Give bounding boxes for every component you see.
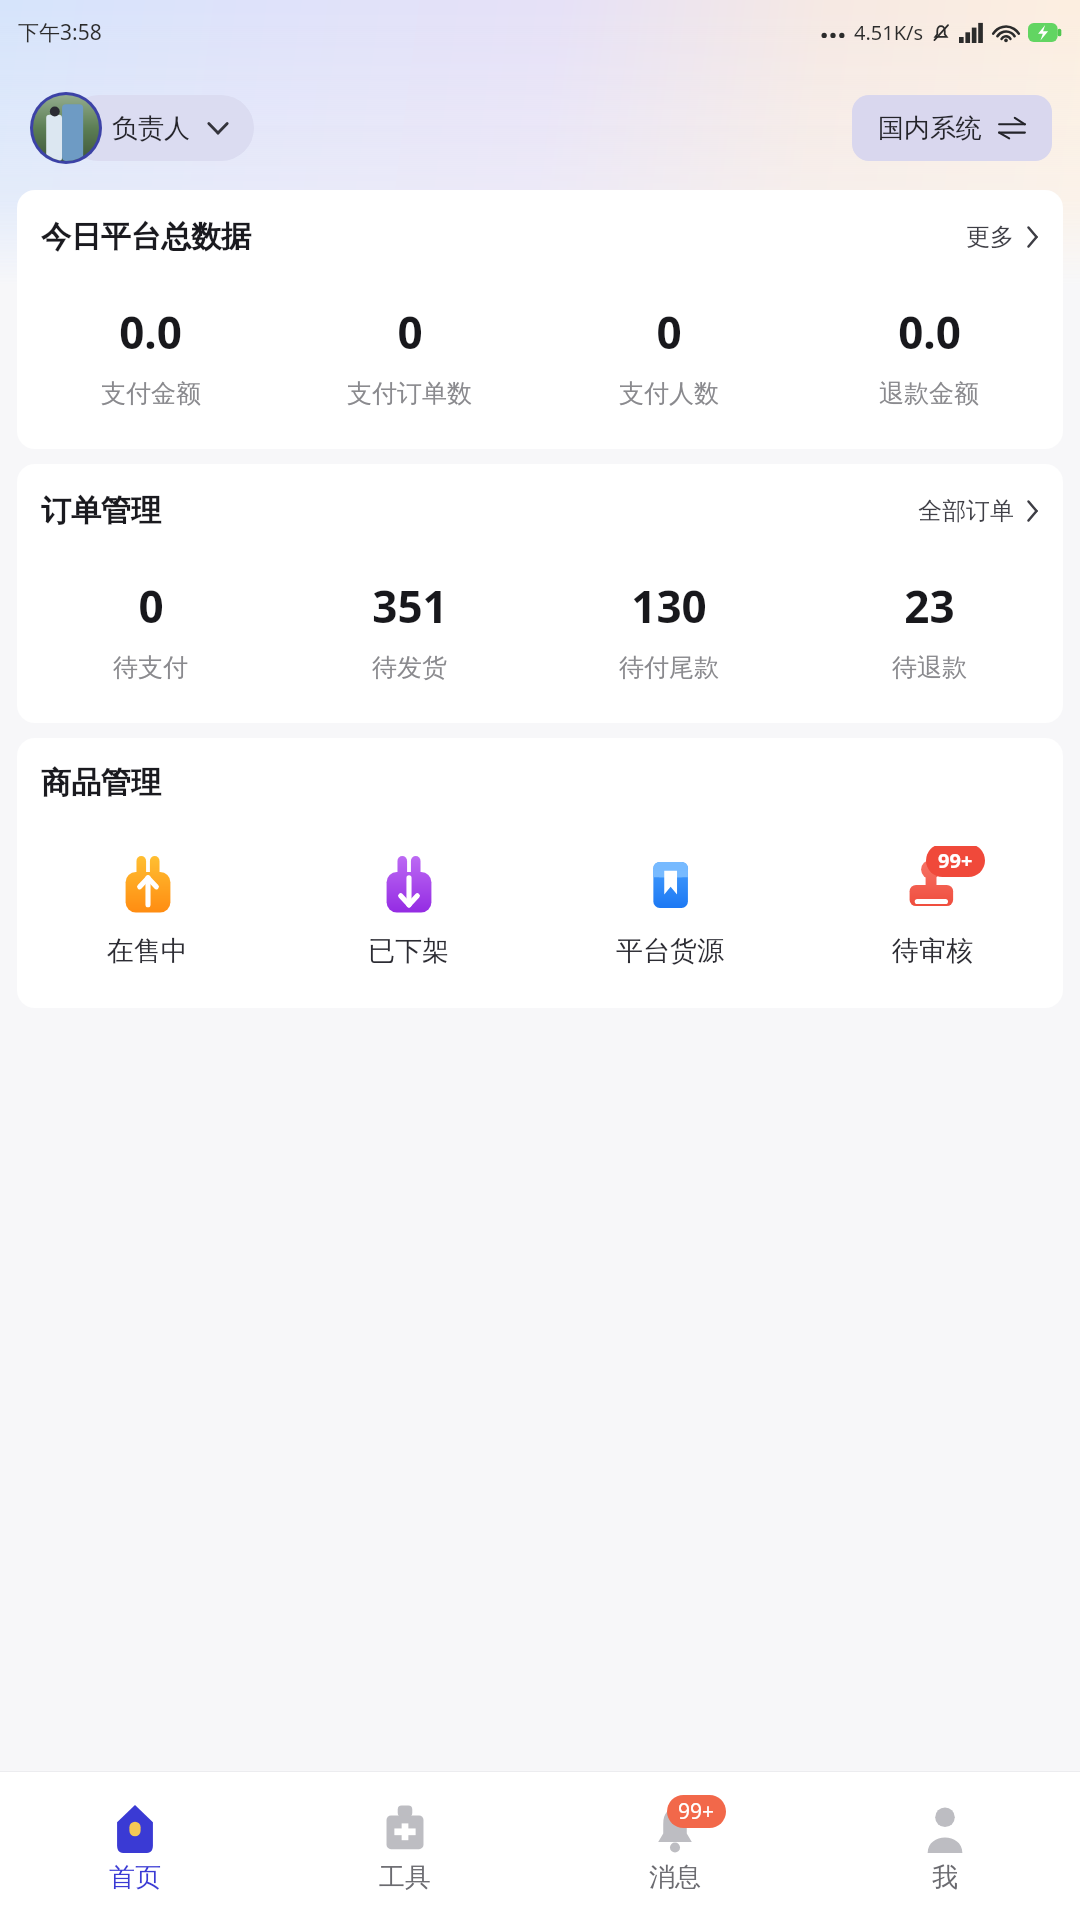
staticText: 待支付 [113,652,188,683]
staticText: 351 [372,576,448,636]
button[interactable]: 0.0 [21,298,280,413]
staticText: 0.0 [898,302,961,362]
button[interactable]: 首页 [0,1772,270,1920]
button[interactable]: 国内系统 [852,95,1052,161]
staticText: 今日平台总数据 [41,218,251,256]
staticText: 待退款 [892,652,967,683]
staticText: 退款金额 [879,378,979,409]
button[interactable]: 平台货源 [539,846,801,972]
button[interactable]: 0.0 [799,298,1059,413]
staticText: 待审核 [892,934,973,968]
button[interactable]: 0 [21,572,280,687]
button[interactable]: 99+ [801,846,1063,972]
staticText: 4.51K/s [854,19,924,46]
staticText: 23 [904,576,955,636]
staticText: 首页 [109,1861,161,1894]
button[interactable]: 已下架 [278,846,539,972]
staticText: 订单管理 [41,492,161,530]
staticText: 支付人数 [619,378,719,409]
button[interactable]: 0 [539,298,799,413]
staticText: 0 [397,302,423,362]
staticText: 我 [932,1861,958,1894]
staticText: 支付金额 [101,378,201,409]
staticText: 0 [656,302,682,362]
button[interactable]: 99+ [540,1772,810,1920]
staticText: 消息 [649,1861,701,1894]
staticText: 99+ [938,847,973,874]
staticText: 负责人 [112,112,190,145]
button[interactable]: 在售中 [17,846,278,972]
button[interactable]: 23 [799,572,1059,687]
staticText: 全部订单 [918,496,1014,526]
button[interactable]: 工具 [270,1772,540,1920]
staticText: 已下架 [368,934,449,968]
staticText: 99+ [678,1797,715,1826]
staticText: 待付尾款 [619,652,719,683]
button[interactable]: 更多 [960,216,1045,258]
staticText: 0 [138,576,164,636]
staticText: 待发货 [372,652,447,683]
button[interactable]: 130 [539,572,799,687]
staticText: 更多 [966,222,1014,252]
other: Profile avatar [33,95,99,161]
staticText: 平台货源 [616,934,724,968]
staticText: 工具 [379,1861,431,1894]
button[interactable]: 351 [280,572,539,687]
staticText: 在售中 [107,934,188,968]
staticText: 下午3:58 [18,18,102,47]
button[interactable]: 0 [280,298,539,413]
staticText: 支付订单数 [347,378,472,409]
staticText: 商品管理 [41,764,161,802]
button[interactable]: 全部订单 [912,490,1045,532]
staticText: 130 [631,576,707,636]
staticText: 0.0 [119,302,182,362]
staticText: 国内系统 [878,112,982,145]
button[interactable]: 我 [810,1772,1080,1920]
button[interactable]: 负责人 [66,95,254,161]
